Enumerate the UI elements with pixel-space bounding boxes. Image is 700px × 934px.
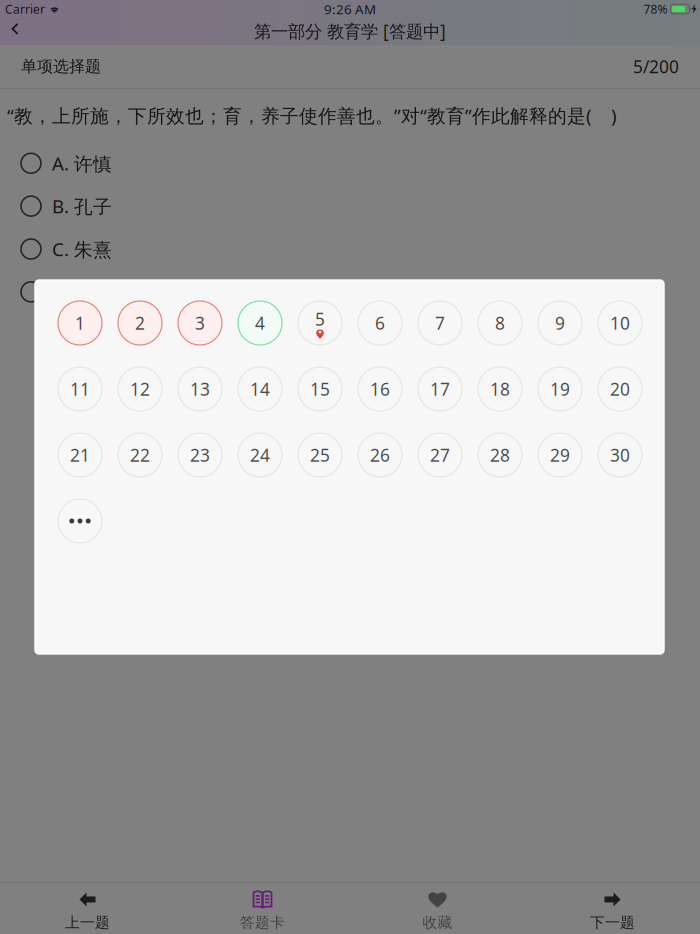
button[interactable]: 30 <box>598 433 642 477</box>
button[interactable]: 24 <box>238 433 282 477</box>
staticText: 23 <box>190 443 210 466</box>
button[interactable]: 20 <box>598 367 642 411</box>
button[interactable]: 28 <box>478 433 522 477</box>
staticText: 7 <box>435 311 445 334</box>
staticText: 4 <box>255 311 265 334</box>
staticText: 5 <box>315 307 325 330</box>
button[interactable]: 16 <box>358 367 402 411</box>
button[interactable]: 25 <box>298 433 342 477</box>
button[interactable]: 23 <box>178 433 222 477</box>
staticText: 27 <box>430 443 450 466</box>
button[interactable]: 4 <box>238 301 282 345</box>
button[interactable]: D. 荀子 <box>0 279 700 304</box>
staticText: D. 荀子 <box>52 279 113 304</box>
button[interactable]: 下一题 <box>525 877 700 934</box>
staticText: 13 <box>190 377 210 400</box>
button[interactable]: 6 <box>358 301 402 345</box>
staticText: 24 <box>250 443 270 466</box>
staticText: A. 许慎 <box>52 151 112 176</box>
staticText: 17 <box>430 377 450 400</box>
staticText: 11 <box>70 377 90 400</box>
staticText: C. 朱熹 <box>52 237 112 261</box>
button[interactable]: 29 <box>538 433 582 477</box>
staticText: 答题卡 <box>240 913 285 931</box>
staticText: 2 <box>135 311 145 334</box>
staticText: 78% <box>643 1 667 17</box>
button[interactable]: 11 <box>58 367 102 411</box>
staticText: 15 <box>310 377 330 400</box>
button[interactable]: 答题卡 <box>175 877 350 934</box>
button[interactable]: Back <box>0 21 33 41</box>
button[interactable]: 1 <box>58 301 102 345</box>
staticText: 1 <box>75 311 85 334</box>
staticText: 第一部分 教育学 [答题中] <box>254 19 446 42</box>
staticText: 9:26 AM <box>324 0 376 18</box>
staticText: “教，上所施，下所效也；育，养子使作善也。”对“教育”作此解释的是( ) <box>7 103 617 128</box>
button[interactable]: 22 <box>118 433 162 477</box>
button[interactable]: 13 <box>178 367 222 411</box>
staticText: 20 <box>610 377 630 400</box>
staticText: 12 <box>130 377 150 400</box>
staticText: 3 <box>195 311 205 334</box>
button[interactable]: 18 <box>478 367 522 411</box>
button[interactable]: 26 <box>358 433 402 477</box>
staticText: 单项选择题 <box>21 57 101 76</box>
button[interactable]: C. 朱熹 <box>0 237 700 261</box>
staticText: 25 <box>310 443 330 466</box>
staticText: 22 <box>130 443 150 466</box>
button[interactable]: 3 <box>178 301 222 345</box>
staticText: 21 <box>70 443 90 466</box>
staticText: 28 <box>490 443 510 466</box>
staticText: 上一题 <box>65 913 110 931</box>
button[interactable]: 9 <box>538 301 582 345</box>
button[interactable]: 5 <box>298 301 342 345</box>
button[interactable]: 7 <box>418 301 462 345</box>
staticText: 9 <box>555 311 565 334</box>
staticText: 下一题 <box>590 913 635 931</box>
staticText: 6 <box>375 311 385 334</box>
button[interactable]: 15 <box>298 367 342 411</box>
staticText: 16 <box>370 377 390 400</box>
button[interactable]: More questions <box>58 499 102 543</box>
staticText: 10 <box>610 311 630 334</box>
button[interactable]: 10 <box>598 301 642 345</box>
button[interactable]: 收藏 <box>350 877 525 934</box>
staticText: 8 <box>495 311 505 334</box>
staticText: 30 <box>610 443 630 466</box>
button[interactable]: 19 <box>538 367 582 411</box>
staticText: 14 <box>250 377 270 400</box>
button[interactable]: 8 <box>478 301 522 345</box>
button[interactable]: 上一题 <box>0 877 175 934</box>
staticText: 收藏 <box>422 913 452 931</box>
staticText: 19 <box>550 377 570 400</box>
button[interactable]: 2 <box>118 301 162 345</box>
staticText: 5/200 <box>633 55 679 78</box>
button[interactable]: 21 <box>58 433 102 477</box>
button[interactable]: A. 许慎 <box>0 151 700 176</box>
button[interactable]: 27 <box>418 433 462 477</box>
staticText: 18 <box>490 377 510 400</box>
staticText: 26 <box>370 443 390 466</box>
staticText: B. 孔子 <box>52 194 112 219</box>
staticText: Carrier <box>5 1 45 17</box>
button[interactable]: 14 <box>238 367 282 411</box>
staticText: 29 <box>550 443 570 466</box>
button[interactable]: 17 <box>418 367 462 411</box>
button[interactable]: B. 孔子 <box>0 194 700 219</box>
button[interactable]: 12 <box>118 367 162 411</box>
